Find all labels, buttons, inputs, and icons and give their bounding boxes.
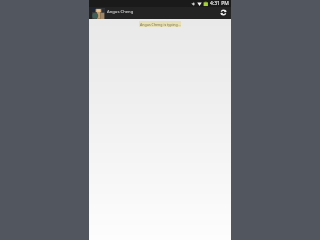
button[interactable]: Contact photo <box>89 7 136 19</box>
staticText: Angus Cheng <box>107 9 134 15</box>
staticText: Angus Cheng is typing... <box>140 22 181 27</box>
staticText: 4:31 PM <box>210 0 229 7</box>
button[interactable]: Refresh <box>217 7 229 19</box>
other: Contact photo <box>92 8 105 19</box>
